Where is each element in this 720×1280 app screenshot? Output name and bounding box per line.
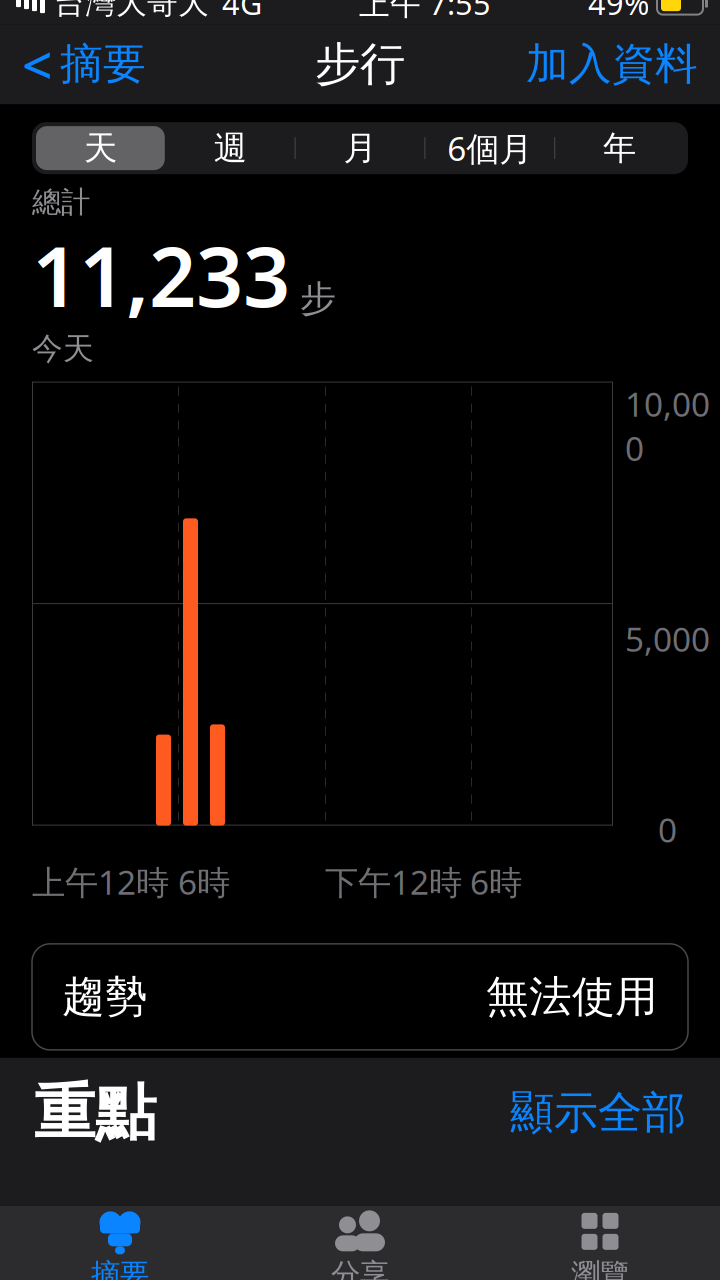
staticText: 瀏覽 [571, 1256, 629, 1280]
button[interactable]: 顯示全部 [490, 1076, 686, 1150]
staticText: 年 [603, 128, 636, 169]
staticText: 週 [214, 128, 247, 169]
staticText: 台灣大哥大 [54, 0, 209, 22]
button[interactable]: 加入資料 [508, 26, 716, 102]
staticText: 10,000 [625, 382, 710, 470]
staticText: 摘要 [60, 38, 146, 90]
staticText: 月 [343, 128, 376, 169]
staticText: 6時 [470, 860, 522, 904]
staticText: 摘要 [91, 1256, 149, 1280]
button[interactable]: 天 [36, 126, 165, 170]
staticText: < [22, 29, 53, 99]
button[interactable]: < [4, 17, 164, 111]
staticText: 加入資料 [526, 38, 698, 90]
button[interactable]: 月 [296, 126, 424, 170]
staticText: 步行 [315, 36, 405, 92]
staticText: 下午12時 [325, 860, 462, 904]
staticText: 無法使用 [486, 971, 658, 1023]
staticText: 重點 [34, 1075, 156, 1150]
staticText: 總計 [32, 184, 90, 220]
button[interactable]: 摘要 [0, 1206, 240, 1280]
staticText: 今天 [32, 330, 94, 368]
staticText: 上午12時 [32, 860, 169, 904]
staticText: 0 [658, 807, 677, 852]
staticText: 6個月 [447, 126, 532, 170]
staticText: 11,233 [32, 220, 290, 330]
staticText: 分享 [331, 1256, 389, 1280]
staticText: 6時 [178, 860, 230, 904]
button[interactable]: 趨勢 [32, 944, 688, 1050]
button[interactable]: 瀏覽 [480, 1206, 720, 1280]
staticText: 步 [300, 277, 336, 321]
button[interactable]: 週 [166, 126, 295, 170]
staticText: 趨勢 [62, 971, 148, 1023]
staticText: 5,000 [625, 617, 710, 661]
staticText: 4G [222, 0, 262, 24]
staticText: 天 [84, 128, 117, 169]
staticText: 顯示全部 [510, 1086, 686, 1140]
button[interactable]: 6個月 [425, 126, 554, 170]
staticText: 上午 7:55 [359, 0, 491, 24]
staticText: 49% [588, 0, 649, 24]
button[interactable]: 年 [555, 126, 684, 170]
button[interactable]: 分享 [240, 1206, 480, 1280]
